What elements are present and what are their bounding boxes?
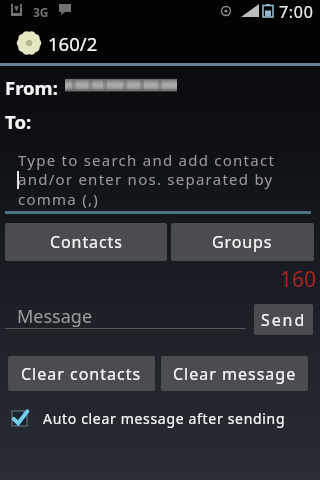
button[interactable]: Auto clear message after sending — [11, 405, 291, 431]
button[interactable]: Send — [254, 304, 313, 335]
staticText: Type to search and add contact and/or en… — [18, 150, 276, 210]
staticText: Auto clear message after sending — [43, 409, 286, 428]
staticText: Clear message — [173, 363, 297, 385]
button[interactable]: Groups — [171, 223, 314, 261]
staticText: Clear contacts — [21, 363, 142, 385]
staticText: Send — [261, 309, 307, 331]
staticText: 160 — [280, 265, 317, 294]
staticText: From: — [5, 75, 58, 100]
staticText: 7:00 — [279, 1, 314, 23]
button[interactable]: Clear message — [161, 356, 308, 391]
staticText: Message — [17, 304, 93, 329]
staticText: 160/2 — [48, 31, 98, 56]
staticText: To: — [5, 109, 32, 134]
staticText: Groups — [212, 231, 273, 253]
staticText: Contacts — [50, 231, 123, 253]
button[interactable]: Clear contacts — [8, 356, 155, 391]
staticText: 3G — [33, 4, 49, 20]
button[interactable]: Contacts — [5, 223, 167, 261]
